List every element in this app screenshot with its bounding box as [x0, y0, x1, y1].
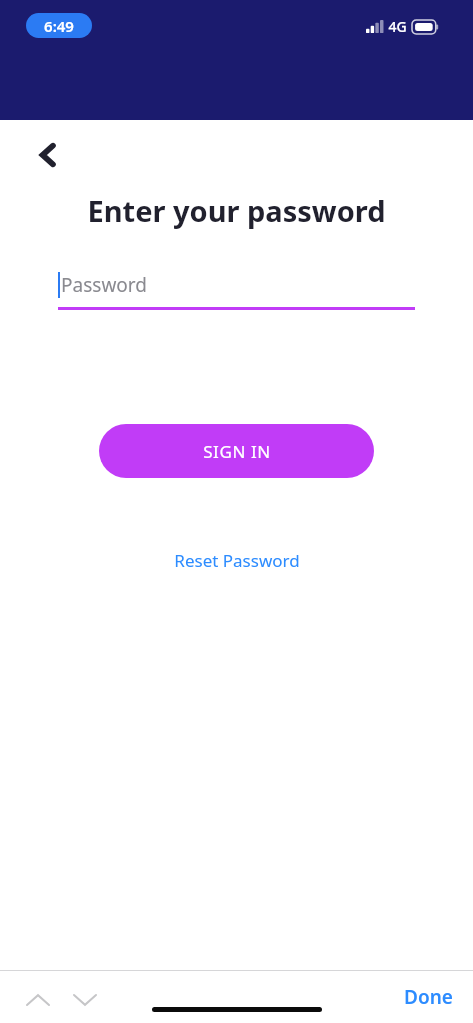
staticText: Password — [61, 272, 147, 298]
staticText: SIGN IN — [203, 440, 271, 463]
button[interactable]: SIGN IN — [99, 424, 374, 478]
staticText: Reset Password — [174, 549, 300, 572]
button[interactable]: Back — [24, 132, 70, 178]
staticText: Done — [404, 984, 453, 1010]
staticText: Enter your password — [87, 191, 386, 230]
staticText: 6:49 — [44, 16, 74, 36]
button[interactable]: Next field — [64, 979, 106, 1021]
button[interactable]: Done — [396, 980, 461, 1014]
staticText: 4G — [388, 17, 407, 36]
button[interactable]: Previous field — [17, 979, 59, 1021]
button[interactable]: Reset Password — [160, 544, 314, 577]
